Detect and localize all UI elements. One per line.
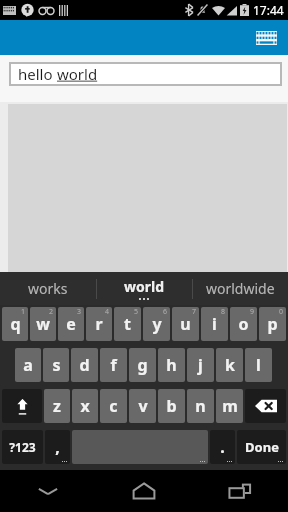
button[interactable]: i <box>201 307 228 341</box>
button[interactable]: Backspace <box>245 389 286 423</box>
staticText: world <box>57 64 98 84</box>
staticText: w <box>36 313 50 335</box>
button[interactable]: h <box>158 348 185 382</box>
button[interactable]: works <box>0 272 96 305</box>
staticText: 3 <box>77 307 82 317</box>
staticText: 1 <box>21 307 26 317</box>
staticText: p <box>267 313 278 335</box>
button[interactable]: f <box>100 348 127 382</box>
staticText: hello <box>18 64 57 84</box>
button[interactable]: g <box>129 348 156 382</box>
button[interactable]: a <box>15 348 41 382</box>
staticText: k <box>225 354 235 376</box>
button[interactable]: q <box>2 307 28 341</box>
staticText: Done <box>245 438 279 456</box>
staticText: 7 <box>192 307 197 317</box>
staticText: j <box>198 354 203 376</box>
button[interactable]: d <box>71 348 98 382</box>
staticText: 2 <box>49 307 54 317</box>
staticText: n <box>195 395 206 417</box>
button[interactable]: Done <box>237 430 286 464</box>
button[interactable]: z <box>44 389 70 423</box>
button[interactable]: . <box>210 430 235 464</box>
staticText: world <box>124 277 165 296</box>
staticText: q <box>10 313 21 335</box>
staticText: l <box>256 354 261 376</box>
staticText: ?123 <box>9 439 36 455</box>
staticText: f <box>110 354 117 376</box>
button[interactable]: Shift <box>2 389 42 423</box>
staticText: m <box>222 395 238 417</box>
staticText: 8 <box>221 307 226 317</box>
button[interactable]: l <box>245 348 272 382</box>
staticText: worldwide <box>206 279 275 298</box>
button[interactable]: b <box>158 389 185 423</box>
staticText: o <box>238 313 249 335</box>
button[interactable]: Home <box>96 470 192 512</box>
button[interactable]: w <box>30 307 56 341</box>
staticText: . <box>220 436 225 458</box>
button[interactable]: n <box>187 389 214 423</box>
staticText: 5 <box>134 307 139 317</box>
staticText: y <box>152 313 162 335</box>
button[interactable]: o <box>230 307 257 341</box>
staticText: c <box>109 395 118 417</box>
button[interactable]: world <box>97 272 192 305</box>
staticText: b <box>166 395 177 417</box>
staticText: v <box>138 395 148 417</box>
button[interactable]: Hide keyboard <box>0 470 96 512</box>
button[interactable]: worldwide <box>193 272 288 305</box>
staticText: 17:44 <box>253 2 284 18</box>
button[interactable]: e <box>58 307 84 341</box>
staticText: t <box>124 313 131 335</box>
staticText: u <box>180 313 191 335</box>
button[interactable]: y <box>143 307 170 341</box>
button[interactable]: hello <box>11 64 280 84</box>
button[interactable]: v <box>129 389 156 423</box>
button[interactable]: c <box>100 389 127 423</box>
button[interactable]: u <box>172 307 199 341</box>
staticText: i <box>212 313 217 335</box>
button[interactable]: t <box>114 307 141 341</box>
button[interactable]: r <box>86 307 112 341</box>
staticText: 6 <box>163 307 168 317</box>
button[interactable]: s <box>43 348 69 382</box>
button[interactable]: ?123 <box>2 430 43 464</box>
staticText: 0 <box>279 307 284 317</box>
staticText: s <box>52 354 61 376</box>
button[interactable]: p <box>259 307 286 341</box>
staticText: , <box>55 436 60 458</box>
button[interactable]: Show keyboard <box>250 22 282 54</box>
staticText: g <box>137 354 148 376</box>
staticText: e <box>66 313 76 335</box>
staticText: x <box>80 395 90 417</box>
staticText: d <box>79 354 90 376</box>
staticText: r <box>95 313 103 335</box>
button[interactable]: x <box>72 389 98 423</box>
staticText: a <box>23 354 33 376</box>
button[interactable]: , <box>45 430 70 464</box>
button[interactable]: j <box>187 348 214 382</box>
button[interactable]: Recent apps <box>192 470 288 512</box>
staticText: h <box>166 354 177 376</box>
button[interactable]: m <box>216 389 243 423</box>
staticText: 9 <box>250 307 255 317</box>
staticText: works <box>28 279 68 298</box>
button[interactable]: k <box>216 348 243 382</box>
staticText: z <box>53 395 61 417</box>
staticText: 4 <box>105 307 110 317</box>
